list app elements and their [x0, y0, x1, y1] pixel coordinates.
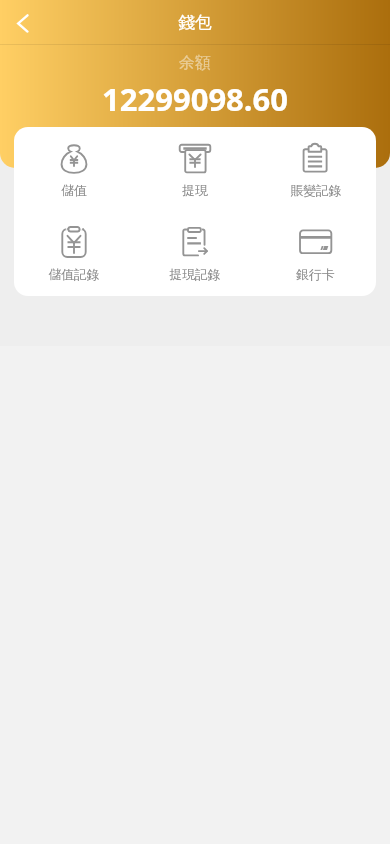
- staticText: 提現記錄: [169, 267, 221, 283]
- staticText: 儲值記錄: [48, 267, 100, 283]
- staticText: 余額: [179, 53, 211, 73]
- button[interactable]: Back: [0, 1, 44, 45]
- button[interactable]: 提現: [134, 127, 255, 199]
- staticText: 儲值: [61, 183, 87, 199]
- button[interactable]: 儲值記錄: [14, 211, 134, 283]
- button[interactable]: 儲值: [14, 127, 134, 199]
- button[interactable]: 賬變記錄: [255, 127, 376, 199]
- staticText: 錢包: [178, 12, 212, 33]
- button[interactable]: 提現記錄: [134, 211, 255, 283]
- staticText: 銀行卡: [296, 267, 335, 283]
- button[interactable]: 銀行卡: [255, 211, 376, 283]
- staticText: 12299098.60: [102, 78, 289, 120]
- staticText: 賬變記錄: [290, 183, 342, 199]
- staticText: 提現: [182, 183, 208, 199]
